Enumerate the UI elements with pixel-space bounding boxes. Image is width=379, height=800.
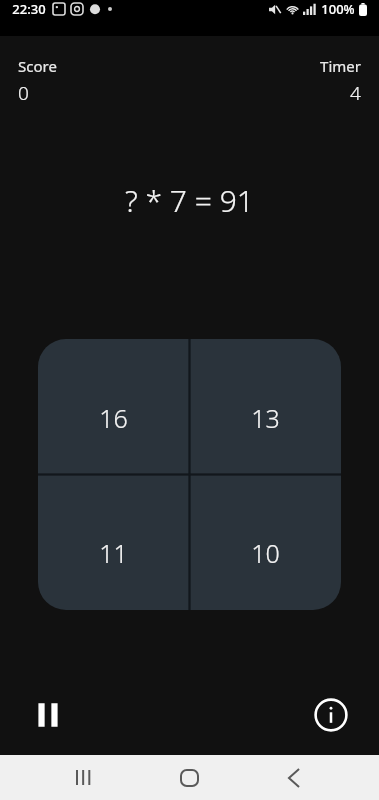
button[interactable]: 13 [189, 339, 341, 474]
button[interactable]: Home [166, 755, 212, 800]
staticText: 4 [350, 80, 361, 106]
button[interactable]: 11 [38, 474, 189, 610]
button[interactable]: Recent apps [61, 755, 107, 800]
staticText: 16 [99, 401, 128, 435]
staticText: Timer [320, 56, 361, 76]
button[interactable]: Back [271, 755, 317, 800]
button[interactable]: Pause [24, 691, 72, 739]
staticText: 13 [251, 401, 280, 435]
staticText: 22:30 [12, 0, 46, 18]
staticText: Score [18, 56, 57, 76]
staticText: 10 [251, 536, 280, 570]
button[interactable]: 10 [189, 474, 341, 610]
button[interactable]: 16 [38, 339, 189, 474]
staticText: 11 [99, 536, 128, 570]
staticText: 100% [321, 0, 355, 18]
staticText: ? * 7 = 91 [125, 180, 254, 221]
staticText: 0 [18, 80, 29, 106]
button[interactable]: Info [307, 691, 355, 739]
